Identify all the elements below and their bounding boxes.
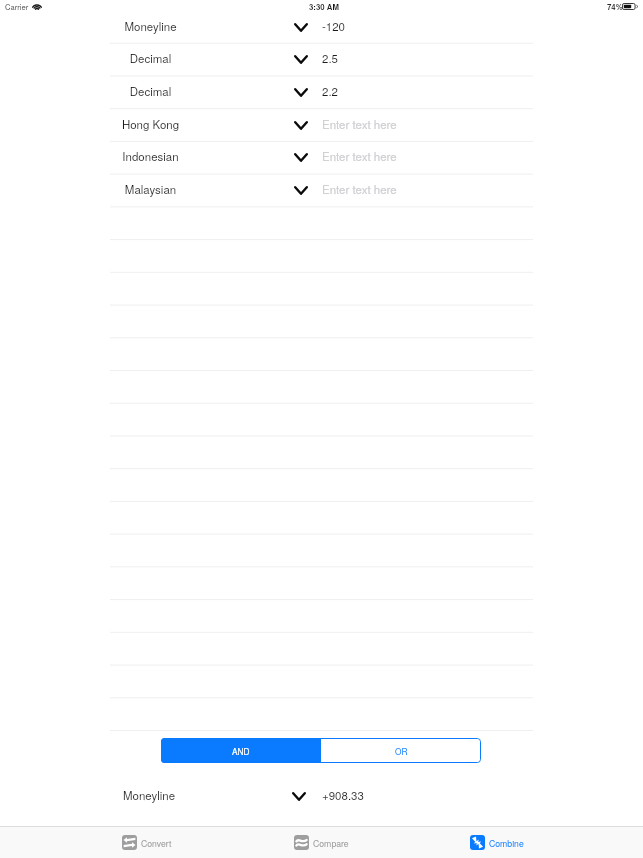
button[interactable]: Decimal — [110, 43, 533, 76]
staticText: Hong Kong — [110, 116, 191, 132]
button[interactable]: AND — [161, 738, 321, 763]
button[interactable]: Select odds format — [290, 16, 312, 38]
staticText: OR — [395, 745, 408, 757]
staticText: Convert — [141, 837, 172, 849]
button[interactable]: Combine — [409, 827, 584, 858]
staticText: Moneyline — [110, 18, 191, 34]
button[interactable]: Moneyline — [110, 11, 533, 44]
button[interactable]: Hong Kong — [110, 109, 533, 142]
button[interactable]: Select odds format — [288, 785, 310, 807]
staticText: Combine — [489, 837, 524, 849]
staticText: +908.33 — [322, 787, 364, 803]
button[interactable]: Select odds format — [290, 146, 312, 168]
staticText: Decimal — [110, 50, 191, 66]
staticText: 3:30 AM — [309, 1, 339, 12]
staticText: Decimal — [110, 83, 191, 99]
button[interactable]: Select odds format — [290, 81, 312, 103]
button[interactable]: Select odds format — [290, 48, 312, 70]
other: Battery 74 percent — [622, 3, 639, 10]
staticText: Enter text here — [322, 181, 397, 197]
staticText: Enter text here — [322, 116, 397, 132]
staticText: 74% — [607, 1, 623, 12]
button[interactable]: Compare — [234, 827, 409, 858]
other: Wi-Fi — [32, 3, 42, 10]
staticText: Compare — [313, 837, 349, 849]
button[interactable]: Moneyline — [110, 780, 533, 813]
button[interactable]: Select odds format — [290, 114, 312, 136]
button[interactable]: Convert — [59, 827, 234, 858]
staticText: Malaysian — [110, 181, 191, 197]
button[interactable]: Select odds format — [290, 179, 312, 201]
staticText: -120 — [322, 18, 346, 34]
staticText: Enter text here — [322, 148, 397, 164]
button[interactable]: Malaysian — [110, 174, 533, 207]
staticText: Carrier — [5, 1, 29, 12]
button[interactable]: Decimal — [110, 76, 533, 109]
staticText: Moneyline — [123, 787, 176, 803]
staticText: Indonesian — [110, 148, 191, 164]
staticText: 2.2 — [322, 83, 338, 99]
staticText: 2.5 — [322, 50, 338, 66]
button[interactable]: Indonesian — [110, 141, 533, 174]
staticText: AND — [232, 745, 250, 757]
button[interactable]: OR — [321, 738, 481, 763]
